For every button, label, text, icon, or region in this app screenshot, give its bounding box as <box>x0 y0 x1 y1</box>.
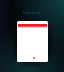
staticText: Checkout <box>23 10 41 15</box>
